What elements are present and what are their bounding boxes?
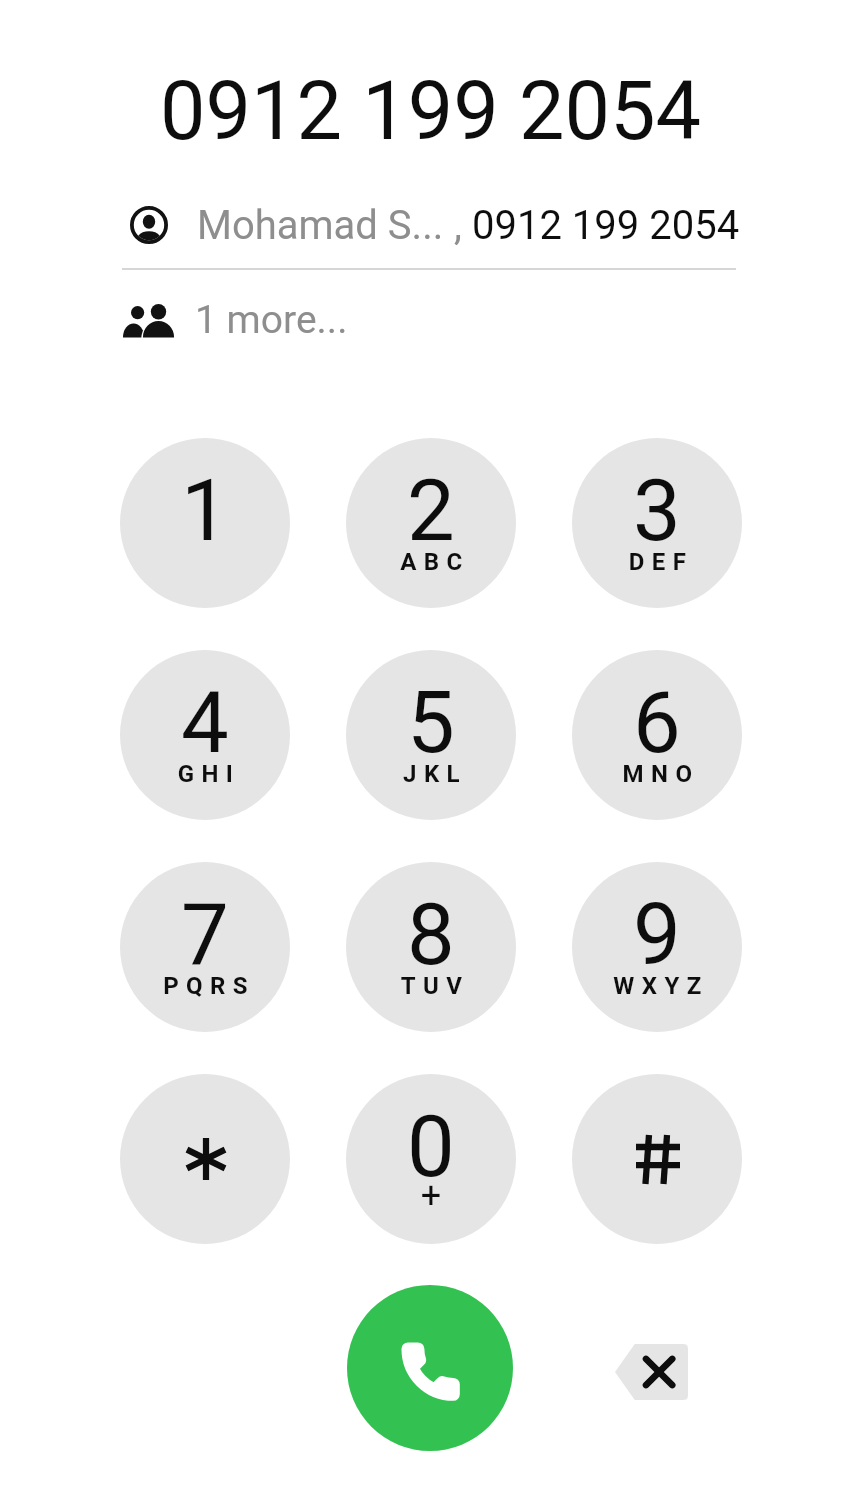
staticText: , (444, 202, 472, 249)
staticText: + (346, 1175, 516, 1217)
staticText: ABC (350, 548, 516, 576)
staticText: 2 (346, 461, 516, 561)
staticText: DEF (576, 548, 742, 576)
staticText: 0 (346, 1097, 516, 1197)
staticText: 7 (120, 885, 290, 985)
staticText: Mohamad S... (197, 202, 444, 249)
staticText: PQRS (124, 972, 290, 1000)
button[interactable]: 8 (346, 862, 516, 1032)
button[interactable]: 2 (346, 438, 516, 608)
button[interactable]: 6 (572, 650, 742, 820)
button[interactable]: Backspace (613, 1344, 688, 1400)
button[interactable]: 4 (120, 650, 290, 820)
button[interactable]: 5 (346, 650, 516, 820)
staticText: JKL (350, 760, 516, 788)
button[interactable]: 7 (120, 862, 290, 1032)
button[interactable]: Mohamad S... (110, 194, 755, 256)
staticText: 4 (120, 673, 290, 773)
staticText: 6 (572, 673, 742, 773)
staticText: TUV (350, 972, 516, 1000)
staticText: GHI (124, 760, 290, 788)
button[interactable]: 3 (572, 438, 742, 608)
staticText: 8 (346, 885, 516, 985)
staticText: 0912 199 2054 (0, 64, 861, 159)
staticText: 9 (572, 885, 742, 985)
staticText: 1 more... (195, 297, 348, 343)
button[interactable]: Call (347, 1285, 513, 1451)
staticText: 1 (120, 461, 290, 561)
other: Star (187, 1138, 225, 1180)
button[interactable]: 0 (346, 1074, 516, 1244)
button[interactable]: 1 more... (110, 290, 755, 350)
staticText: 0912 199 2054 (472, 202, 740, 249)
other: Pound (636, 1135, 680, 1184)
button[interactable]: Star (120, 1074, 290, 1244)
button[interactable]: 1 (120, 438, 290, 608)
button[interactable]: Pound (572, 1074, 742, 1244)
staticText: MNO (576, 760, 742, 788)
staticText: 3 (572, 461, 742, 561)
staticText: WXYZ (576, 972, 742, 1000)
button[interactable]: 9 (572, 862, 742, 1032)
staticText: 5 (346, 673, 516, 773)
